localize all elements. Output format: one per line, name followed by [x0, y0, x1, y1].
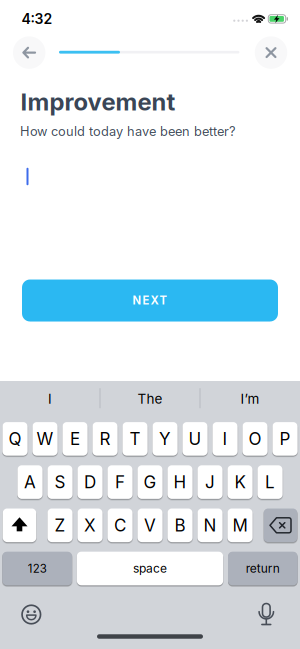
button[interactable]: U [182, 421, 208, 456]
button[interactable]: Shift [3, 508, 36, 543]
staticText: N [203, 515, 216, 535]
staticText: How could today have been better? [20, 124, 236, 139]
staticText: 123 [28, 562, 47, 575]
button[interactable]: X [77, 508, 103, 543]
button[interactable]: Delete [264, 508, 297, 543]
button[interactable]: R [92, 421, 118, 456]
button[interactable]: W [32, 421, 58, 456]
button[interactable]: Back [13, 36, 45, 69]
button[interactable]: I’m [201, 382, 299, 416]
staticText: return [246, 561, 280, 575]
staticText: N E X T [132, 294, 167, 307]
staticText: 4:32 [21, 11, 52, 27]
staticText: P [279, 429, 290, 449]
staticText: A [24, 472, 36, 492]
staticText: Q [8, 429, 21, 449]
button[interactable]: T [122, 421, 148, 456]
staticText: I [222, 429, 227, 449]
button[interactable]: V [137, 508, 163, 543]
staticText: K [234, 472, 245, 492]
button[interactable]: O [242, 421, 268, 456]
button[interactable]: 123 [2, 551, 72, 586]
button[interactable]: The [101, 382, 199, 416]
staticText: D [84, 472, 96, 492]
button[interactable]: P [272, 421, 298, 456]
staticText: X [84, 515, 96, 535]
staticText: V [144, 515, 156, 535]
button[interactable]: L [257, 465, 283, 500]
button[interactable]: Emoji [20, 603, 42, 625]
button[interactable]: space [77, 551, 223, 586]
staticText: O [248, 429, 261, 449]
button[interactable]: return [228, 551, 298, 586]
button[interactable]: M [227, 508, 253, 543]
staticText: M [232, 515, 247, 535]
button[interactable]: E [62, 421, 88, 456]
staticText: I [48, 391, 52, 407]
button[interactable]: Dictate [257, 603, 275, 625]
staticText: S [54, 472, 65, 492]
button[interactable]: B [167, 508, 193, 543]
button[interactable]: I [1, 382, 99, 416]
staticText: C [114, 515, 126, 535]
staticText: Y [159, 429, 171, 449]
button[interactable]: H [167, 465, 193, 500]
button[interactable]: G [137, 465, 163, 500]
button[interactable]: Close [255, 36, 287, 69]
staticText: The [137, 391, 162, 407]
staticText: G [143, 472, 156, 492]
staticText: U [188, 429, 201, 449]
staticText: space [133, 561, 167, 575]
staticText: L [265, 472, 275, 492]
staticText: B [174, 515, 185, 535]
button[interactable]: S [47, 465, 73, 500]
staticText: W [36, 429, 53, 449]
staticText: R [99, 429, 110, 449]
staticText: F [115, 472, 125, 492]
button[interactable]: K [227, 465, 253, 500]
staticText: E [70, 429, 80, 449]
staticText: I’m [240, 391, 259, 407]
button[interactable]: Y [152, 421, 178, 456]
button[interactable]: I [212, 421, 238, 456]
button[interactable]: J [197, 465, 223, 500]
button[interactable]: C [107, 508, 133, 543]
button[interactable]: Z [47, 508, 73, 543]
staticText: T [129, 429, 140, 449]
button[interactable]: D [77, 465, 103, 500]
button[interactable]: N [197, 508, 223, 543]
staticText: Z [54, 515, 65, 535]
staticText: Improvement [20, 88, 175, 116]
button[interactable]: Q [2, 421, 28, 456]
staticText: H [173, 472, 186, 492]
button[interactable]: F [107, 465, 133, 500]
button[interactable]: A [17, 465, 43, 500]
staticText: J [205, 472, 215, 492]
button[interactable]: N E X T [22, 279, 278, 321]
